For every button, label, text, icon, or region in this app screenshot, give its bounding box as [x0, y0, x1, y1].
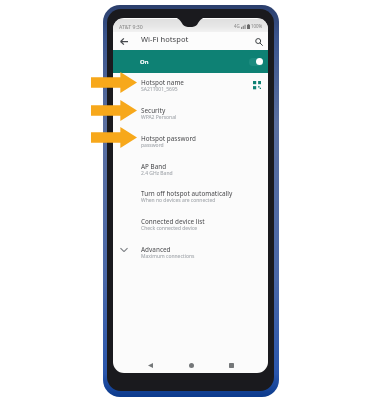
other: Callout arrow [91, 127, 137, 148]
staticText: Hotspot password [141, 134, 196, 143]
button[interactable]: Back [117, 35, 130, 48]
staticText: AT&T 9:30 [119, 23, 143, 30]
staticText: When no devices are connected [141, 197, 216, 204]
button[interactable]: Back [138, 358, 162, 373]
staticText: 2.4 GHz Band [141, 170, 173, 177]
staticText: Check connected device [141, 225, 198, 232]
button[interactable]: AP Band [113, 162, 268, 190]
button[interactable]: On [113, 50, 268, 73]
button[interactable]: Hotspot password [113, 134, 268, 162]
button[interactable]: Hotspot name [113, 78, 268, 106]
button[interactable]: Search [252, 35, 265, 48]
button[interactable]: Turn off hotspot automatically [113, 189, 268, 217]
other: Callout arrow [91, 100, 137, 121]
staticText: 4G [234, 23, 240, 29]
staticText: password [141, 142, 164, 149]
staticText: Maximum connections [141, 253, 195, 260]
staticText: On [140, 58, 149, 66]
staticText: Security [141, 106, 166, 115]
staticText: WPA2 Personal [141, 114, 177, 121]
button[interactable]: Recent apps [219, 358, 243, 373]
staticText: AP Band [141, 162, 167, 171]
other: Callout arrow [91, 72, 137, 93]
button[interactable]: Security [113, 106, 268, 134]
staticText: Wi-Fi hotspot [141, 34, 189, 44]
staticText: Hotspot name [141, 78, 184, 87]
button[interactable]: Home [179, 358, 203, 373]
staticText: Turn off hotspot automatically [141, 189, 233, 198]
staticText: Advanced [141, 245, 171, 254]
button[interactable]: Connected device list [113, 217, 268, 245]
button[interactable]: Advanced [113, 245, 268, 273]
staticText: Connected device list [141, 217, 205, 226]
staticText: SA21T001_5695 [141, 86, 178, 93]
staticText: 100% [251, 23, 263, 29]
